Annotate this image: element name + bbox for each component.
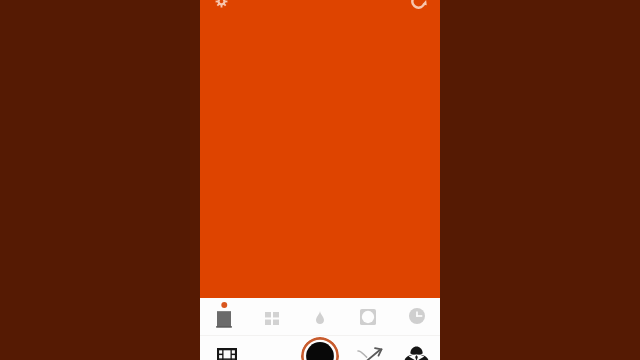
button[interactable]: Switch camera bbox=[411, 0, 426, 9]
button[interactable]: Timer bbox=[409, 308, 425, 324]
button[interactable]: Vignette bbox=[360, 309, 376, 325]
button[interactable]: Settings bbox=[215, 0, 228, 8]
button[interactable]: Blur bbox=[316, 311, 324, 324]
button[interactable]: Video bbox=[217, 348, 237, 360]
button[interactable]: Shutter bbox=[301, 337, 339, 360]
button[interactable]: Profile bbox=[404, 346, 429, 360]
button[interactable]: Filter bbox=[217, 302, 231, 328]
button[interactable]: Grid bbox=[265, 312, 279, 325]
button[interactable]: Share bbox=[357, 346, 384, 360]
